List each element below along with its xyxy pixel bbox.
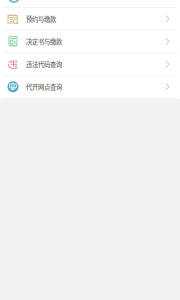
- staticText: 违法代码查询: [26, 60, 62, 69]
- button[interactable]: 决定书与缴款: [0, 31, 180, 53]
- staticText: 预约与缴款: [26, 14, 56, 23]
- button[interactable]: 代开网点查询: [0, 76, 180, 98]
- staticText: 决定书与缴款: [26, 37, 62, 46]
- button[interactable]: 违法代码查询: [0, 53, 180, 76]
- button[interactable]: 预约与缴款: [0, 8, 180, 31]
- staticText: 代开网点查询: [26, 82, 62, 91]
